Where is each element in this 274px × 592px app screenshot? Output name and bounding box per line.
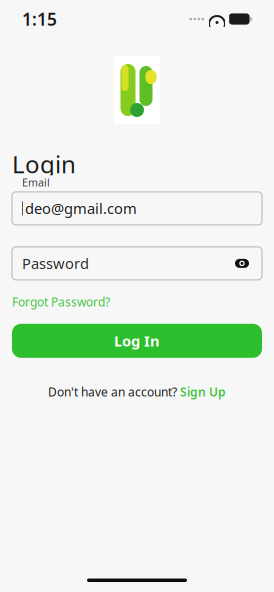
staticText: Log In [114,331,160,351]
staticText: Password [22,254,89,273]
staticText: Forgot Password? [12,294,110,310]
button[interactable]: Forgot Password? [12,294,110,310]
staticText: Sign Up [180,384,226,400]
staticText: deo@gmail.com [25,199,137,218]
staticText: Email [22,175,50,190]
staticText: Login [12,148,76,180]
button[interactable]: Don't have an account? [40,380,234,404]
button[interactable]: Log In [12,324,262,358]
button[interactable]: Show password [232,255,252,271]
staticText: 1:15 [22,7,57,30]
staticText: Don't have an account? [48,384,177,400]
